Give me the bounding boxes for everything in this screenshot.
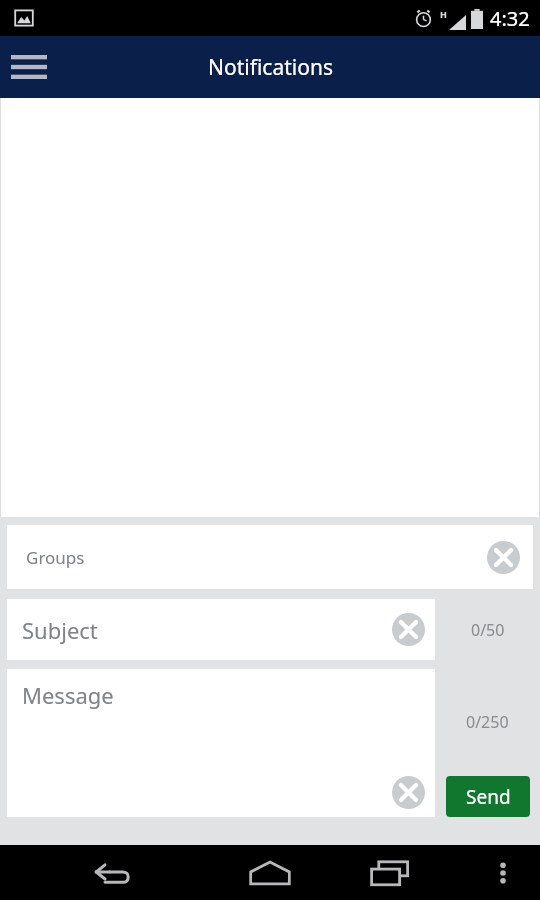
staticText: 0/50	[471, 619, 505, 641]
button[interactable]: More options	[465, 845, 540, 900]
button[interactable]: Send	[446, 776, 530, 817]
button[interactable]: Open navigation menu	[0, 36, 58, 98]
button[interactable]: Message	[7, 669, 435, 817]
button[interactable]: Groups	[7, 525, 533, 589]
staticText: Message	[22, 680, 114, 710]
staticText: 0/250	[466, 711, 509, 733]
staticText: Groups	[26, 546, 85, 569]
button[interactable]: Subject	[7, 599, 435, 660]
staticText: Subject	[22, 615, 98, 645]
button[interactable]: Home	[225, 845, 315, 900]
staticText: Notifications	[208, 53, 333, 82]
button[interactable]: Back	[0, 845, 225, 900]
button[interactable]: Clear text	[392, 776, 425, 809]
staticText: 4:32	[490, 5, 530, 32]
button[interactable]: Recent apps	[315, 845, 465, 900]
button[interactable]: Clear text	[487, 541, 520, 574]
button[interactable]: Clear text	[392, 613, 425, 646]
staticText: Send	[466, 784, 511, 810]
staticText: H	[440, 8, 447, 20]
